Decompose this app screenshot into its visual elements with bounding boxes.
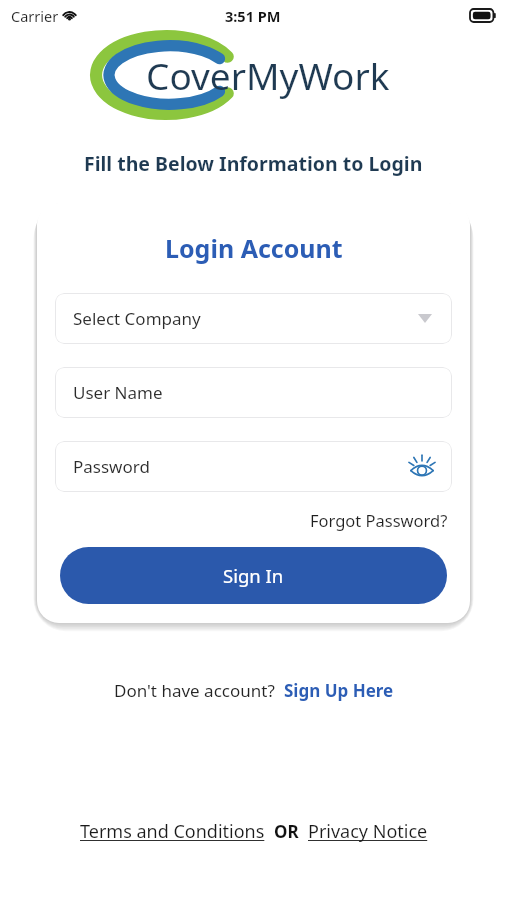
staticText: Login Account	[165, 231, 343, 265]
button[interactable]: Forgot Password?	[306, 505, 452, 535]
staticText: Sign In	[223, 563, 284, 588]
other: Show password	[408, 456, 436, 478]
staticText: Select Company	[73, 307, 201, 330]
button[interactable]: Sign Up Here	[284, 679, 394, 702]
staticText: Carrier	[11, 6, 59, 26]
staticText: 3:51 PM	[225, 6, 281, 26]
other: CoverMyWork logo	[90, 30, 242, 120]
button[interactable]: Terms and Conditions	[80, 819, 265, 844]
button[interactable]: Password	[55, 441, 452, 492]
other: Wi-Fi	[61, 7, 78, 21]
button[interactable]: Select Company	[55, 293, 452, 344]
other: Battery full	[470, 9, 496, 22]
button[interactable]: User Name	[55, 367, 452, 418]
staticText: Privacy Notice	[308, 819, 428, 844]
staticText: Password	[73, 455, 150, 478]
button[interactable]: Privacy Notice	[308, 819, 428, 844]
staticText: Fill the Below Information to Login	[84, 150, 423, 177]
staticText: Don't have account?	[114, 679, 284, 702]
staticText: CoverMyWork	[146, 50, 390, 100]
staticText: User Name	[73, 381, 163, 404]
staticText: Sign Up Here	[284, 679, 394, 702]
staticText: Forgot Password?	[310, 509, 448, 531]
button[interactable]: Sign In	[60, 547, 447, 604]
staticText: Terms and Conditions	[80, 819, 265, 844]
staticText: OR	[274, 820, 299, 843]
